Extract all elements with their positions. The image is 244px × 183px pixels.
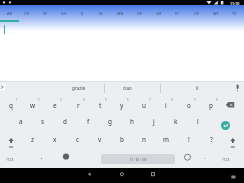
staticText: EF bbox=[43, 11, 48, 16]
staticText: z bbox=[31, 135, 35, 144]
button[interactable]: m bbox=[146, 131, 186, 147]
button[interactable]: b bbox=[102, 131, 142, 147]
button[interactable]: y bbox=[102, 97, 142, 113]
staticText: g bbox=[108, 117, 112, 126]
button[interactable]: a bbox=[1, 113, 41, 129]
staticText: UV bbox=[194, 11, 200, 16]
button[interactable]: e bbox=[35, 97, 75, 113]
button[interactable]: YZ bbox=[225, 5, 244, 22]
button[interactable]: ciao bbox=[107, 80, 147, 96]
staticText: 0 bbox=[216, 98, 218, 102]
button[interactable]: h bbox=[112, 113, 152, 129]
staticText: b bbox=[120, 135, 124, 144]
staticText: 5 bbox=[105, 98, 107, 102]
button[interactable]: CD bbox=[18, 5, 36, 22]
staticText: q bbox=[9, 101, 13, 110]
button[interactable]: ! bbox=[169, 131, 209, 147]
button[interactable]: o bbox=[169, 97, 209, 113]
staticText: r bbox=[77, 101, 80, 110]
staticText: OP bbox=[137, 11, 143, 16]
staticText: 1 bbox=[16, 98, 18, 102]
staticText: 2 bbox=[38, 98, 40, 102]
staticText: IT · ES · EN bbox=[130, 157, 147, 162]
staticText: WX bbox=[213, 11, 219, 16]
button[interactable]: n bbox=[124, 131, 164, 147]
button[interactable]: j bbox=[134, 113, 174, 129]
staticText: KL bbox=[99, 11, 104, 16]
staticText: x bbox=[53, 135, 57, 144]
staticText: 6 bbox=[127, 98, 129, 102]
button[interactable]: x bbox=[35, 131, 75, 147]
button[interactable]: d bbox=[45, 113, 85, 129]
staticText: f bbox=[87, 117, 90, 126]
button[interactable]: w bbox=[13, 97, 53, 113]
button[interactable]: KL bbox=[92, 5, 111, 22]
button[interactable]: UV bbox=[187, 5, 206, 22]
button[interactable]: QR bbox=[149, 5, 168, 22]
button[interactable]: ST bbox=[168, 5, 187, 22]
staticText: il bbox=[196, 85, 199, 91]
staticText: , bbox=[41, 153, 43, 161]
button[interactable]: . bbox=[185, 149, 225, 165]
button[interactable]: ? bbox=[191, 131, 231, 147]
staticText: v bbox=[98, 135, 102, 144]
button[interactable]: IT · ES · EN bbox=[101, 154, 175, 164]
button[interactable]: f bbox=[68, 113, 108, 129]
staticText: ?123 bbox=[6, 157, 14, 162]
button[interactable]: l bbox=[178, 113, 218, 129]
button[interactable]: MN bbox=[111, 5, 130, 22]
button[interactable]: t bbox=[80, 97, 120, 113]
staticText: o bbox=[187, 101, 191, 110]
staticText: 4 bbox=[83, 98, 85, 102]
button[interactable]: z bbox=[13, 131, 53, 147]
button[interactable]: il bbox=[177, 80, 217, 96]
button[interactable]: grazie bbox=[59, 80, 99, 96]
button[interactable]: OP bbox=[130, 5, 149, 22]
staticText: p bbox=[209, 101, 213, 110]
staticText: e bbox=[53, 101, 57, 110]
staticText: i bbox=[165, 101, 167, 110]
button[interactable] bbox=[221, 121, 230, 130]
staticText: CD bbox=[24, 11, 30, 16]
button[interactable]: r bbox=[58, 97, 98, 113]
staticText: s bbox=[41, 117, 45, 126]
staticText: MN bbox=[117, 11, 124, 16]
button[interactable]: i bbox=[146, 97, 186, 113]
button[interactable]: v bbox=[80, 131, 120, 147]
staticText: 11:10 bbox=[230, 1, 240, 6]
staticText: QR bbox=[156, 11, 162, 16]
button[interactable]: , bbox=[22, 149, 62, 165]
button[interactable]: GH bbox=[54, 5, 73, 22]
staticText: ?123 bbox=[222, 157, 230, 162]
staticText: n bbox=[142, 135, 146, 144]
button[interactable]: ?123 bbox=[0, 151, 30, 167]
button[interactable]: s bbox=[23, 113, 63, 129]
button[interactable]: u bbox=[124, 97, 164, 113]
staticText: k bbox=[174, 117, 178, 126]
button[interactable]: c bbox=[58, 131, 98, 147]
staticText: l bbox=[197, 117, 199, 126]
staticText: a bbox=[19, 117, 23, 126]
button[interactable]: WX bbox=[206, 5, 225, 22]
staticText: YZ bbox=[232, 11, 237, 16]
staticText: . bbox=[204, 153, 206, 161]
staticText: GH bbox=[61, 11, 67, 16]
button[interactable]: AB bbox=[0, 5, 18, 22]
staticText: w bbox=[30, 101, 36, 110]
staticText: ciao bbox=[123, 85, 132, 91]
staticText: 7 bbox=[149, 98, 151, 102]
button[interactable]: EF bbox=[36, 5, 54, 22]
staticText: 3 bbox=[60, 98, 62, 102]
staticText: ! bbox=[188, 135, 190, 144]
button[interactable]: p bbox=[191, 97, 231, 113]
button[interactable]: IJ bbox=[73, 5, 92, 22]
staticText: h bbox=[130, 117, 134, 126]
staticText: u bbox=[142, 101, 146, 110]
button[interactable]: g bbox=[90, 113, 130, 129]
button[interactable]: ?123 bbox=[206, 151, 244, 167]
button[interactable]: q bbox=[0, 97, 31, 113]
button[interactable]: k bbox=[156, 113, 196, 129]
staticText: m bbox=[163, 135, 169, 144]
staticText: y bbox=[120, 101, 124, 110]
staticText: c bbox=[76, 135, 80, 144]
